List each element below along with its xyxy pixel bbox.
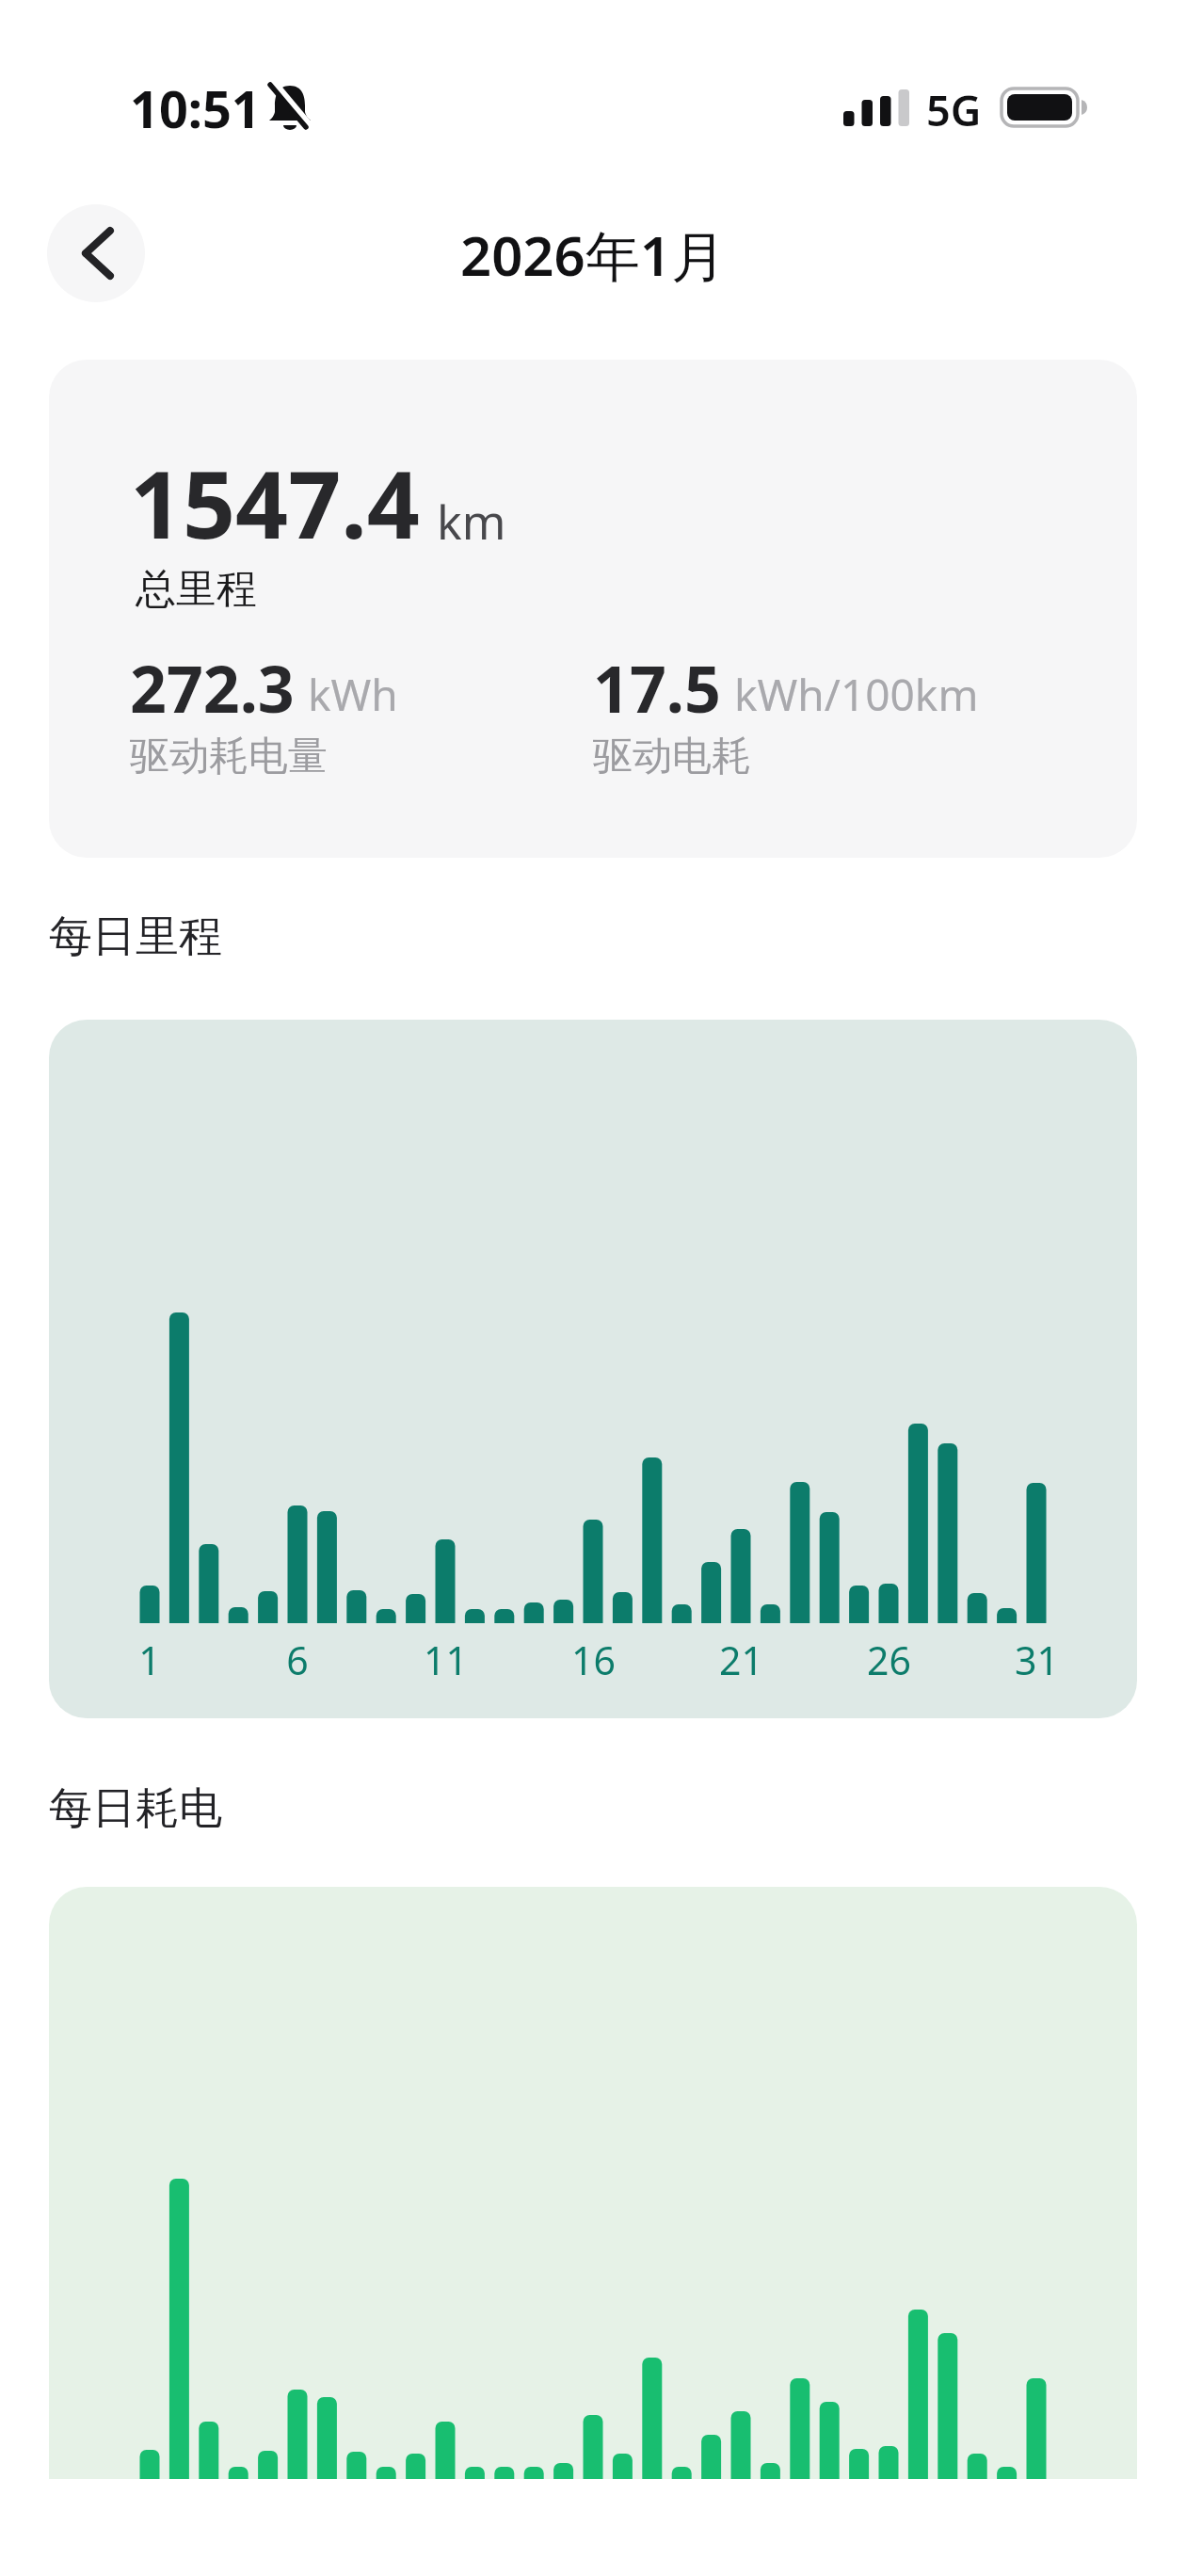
staticText: 26 (867, 1634, 911, 1686)
staticText: 总里程 (136, 564, 257, 615)
staticText: 31 (1015, 1634, 1059, 1686)
staticText: 10:51 (130, 73, 261, 143)
staticText: kWh/100km (734, 665, 979, 724)
staticText: 11 (424, 1634, 468, 1686)
staticText: 驱动耗电量 (130, 732, 328, 781)
staticText: 272.3 (130, 644, 295, 732)
staticText: 5G (926, 81, 982, 138)
button[interactable] (49, 1887, 1137, 2479)
staticText: 驱动电耗 (593, 732, 751, 781)
staticText: 17.5 (593, 644, 721, 732)
button[interactable]: 1 (49, 1020, 1137, 1718)
staticText: 每日里程 (49, 910, 222, 964)
staticText: km (437, 490, 506, 554)
staticText: 1 (138, 1634, 161, 1686)
button[interactable]: 1547.4 (49, 360, 1137, 858)
staticText: 每日耗电 (49, 1781, 222, 1836)
staticText: 16 (571, 1634, 616, 1686)
button[interactable] (47, 204, 145, 302)
staticText: 21 (719, 1634, 763, 1686)
staticText: kWh (308, 665, 398, 724)
staticText: 6 (286, 1634, 309, 1686)
staticText: 1547.4 (130, 440, 420, 565)
staticText: 2026年1月 (460, 217, 726, 292)
